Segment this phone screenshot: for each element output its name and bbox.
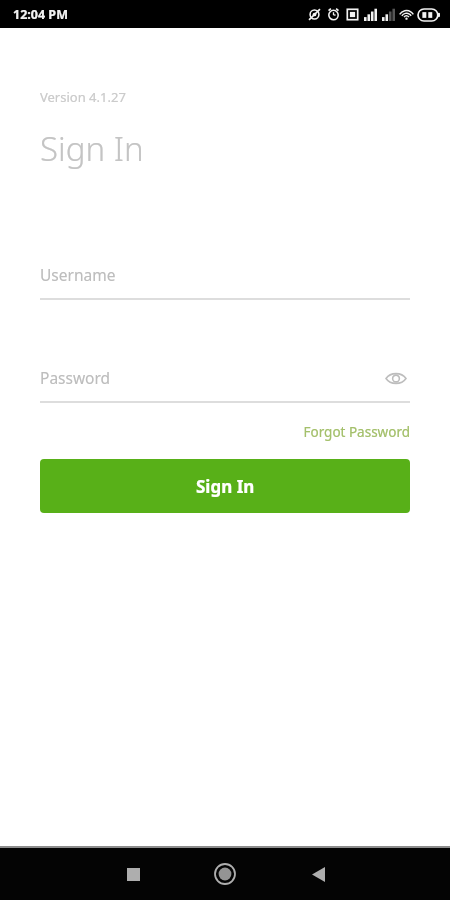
staticText: Forgot Password (303, 423, 410, 441)
button[interactable]: Recent apps (113, 854, 153, 894)
staticText: Sign In (40, 126, 144, 171)
button[interactable]: Home (204, 853, 246, 895)
staticText: Password (40, 367, 111, 388)
button[interactable]: Show password (382, 364, 410, 392)
button[interactable]: Password (40, 359, 410, 399)
staticText: Sign In (196, 475, 255, 498)
button[interactable]: Forgot Password (303, 421, 410, 443)
staticText: Username (40, 264, 116, 285)
staticText: 12:04 PM (13, 6, 68, 23)
button[interactable]: Back (298, 854, 338, 894)
staticText: Version 4.1.27 (40, 88, 126, 106)
button[interactable]: Username (40, 256, 410, 300)
button[interactable]: Sign In (40, 459, 410, 513)
